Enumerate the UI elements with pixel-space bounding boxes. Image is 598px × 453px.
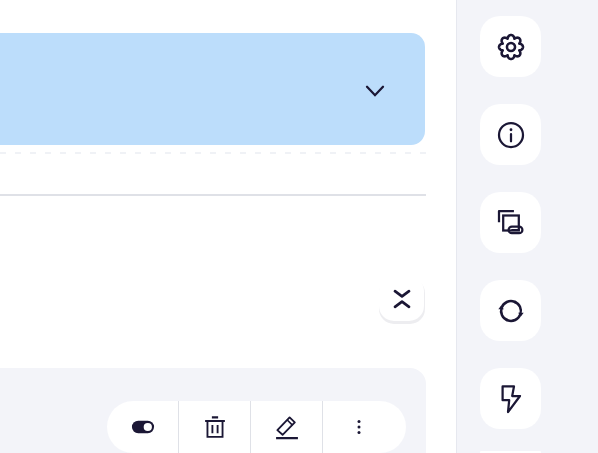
button[interactable]: Toggle <box>107 401 178 453</box>
button[interactable]: Sync <box>480 280 541 341</box>
button[interactable]: Settings <box>480 16 541 77</box>
button[interactable]: Delete <box>179 401 250 453</box>
button[interactable]: More options <box>323 401 394 453</box>
button[interactable]: Collapse row <box>0 33 425 145</box>
button[interactable]: Edit <box>251 401 322 453</box>
button[interactable]: Automations <box>480 368 541 429</box>
button[interactable]: Information <box>480 104 541 165</box>
button[interactable]: Duplicate with link <box>480 192 541 253</box>
button[interactable]: Collapse and expand <box>379 276 424 321</box>
